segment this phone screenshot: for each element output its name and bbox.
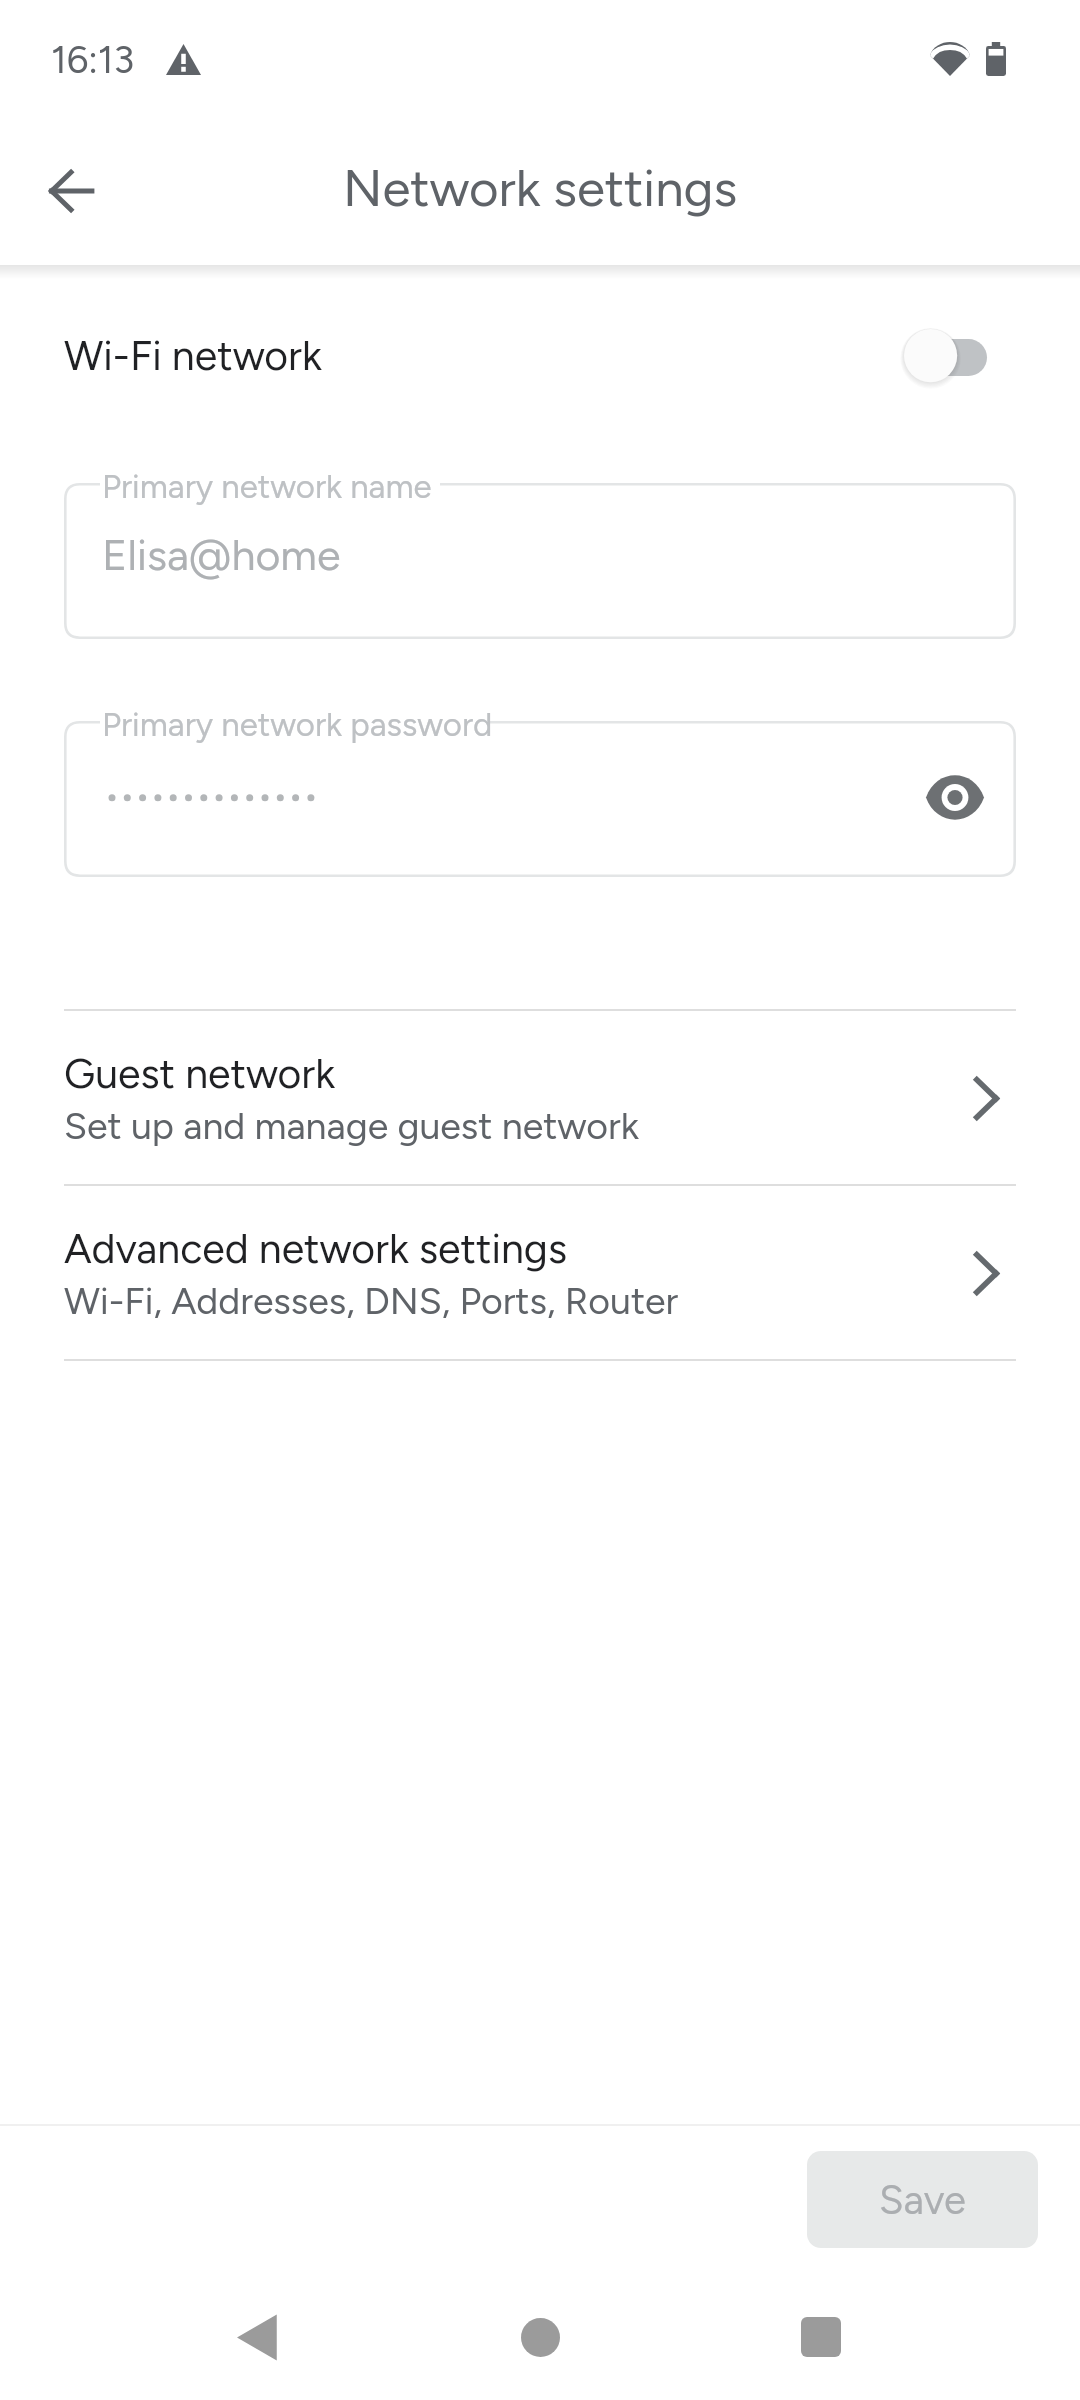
button[interactable]: Recent apps [776, 2292, 866, 2382]
staticText: Guest network [64, 1049, 336, 1098]
button[interactable]: Advanced network settings [0, 1186, 1080, 1359]
staticText: Primary network name [102, 467, 432, 507]
staticText: Elisa@home [102, 529, 341, 581]
staticText: Wi-Fi, Addresses, DNS, Ports, Router [64, 1278, 679, 1323]
staticText: Primary network password [102, 705, 493, 745]
staticText: Network settings [343, 158, 738, 219]
button[interactable]: Show password [909, 752, 1000, 843]
button[interactable]: Home [495, 2292, 585, 2382]
staticText: 16:13 [51, 37, 135, 83]
button[interactable]: Navigate up [26, 146, 116, 236]
button[interactable]: Back [211, 2292, 301, 2382]
staticText: Set up and manage guest network [64, 1103, 639, 1148]
staticText: Save [879, 2176, 966, 2224]
button[interactable]: Wi-Fi network [890, 318, 1020, 398]
button[interactable] [64, 483, 1016, 639]
button[interactable]: Guest network [0, 1011, 1080, 1184]
staticText: Wi-Fi network [64, 331, 322, 380]
button[interactable]: Save [807, 2151, 1038, 2248]
button[interactable] [64, 721, 1016, 877]
staticText: Advanced network settings [64, 1224, 567, 1273]
